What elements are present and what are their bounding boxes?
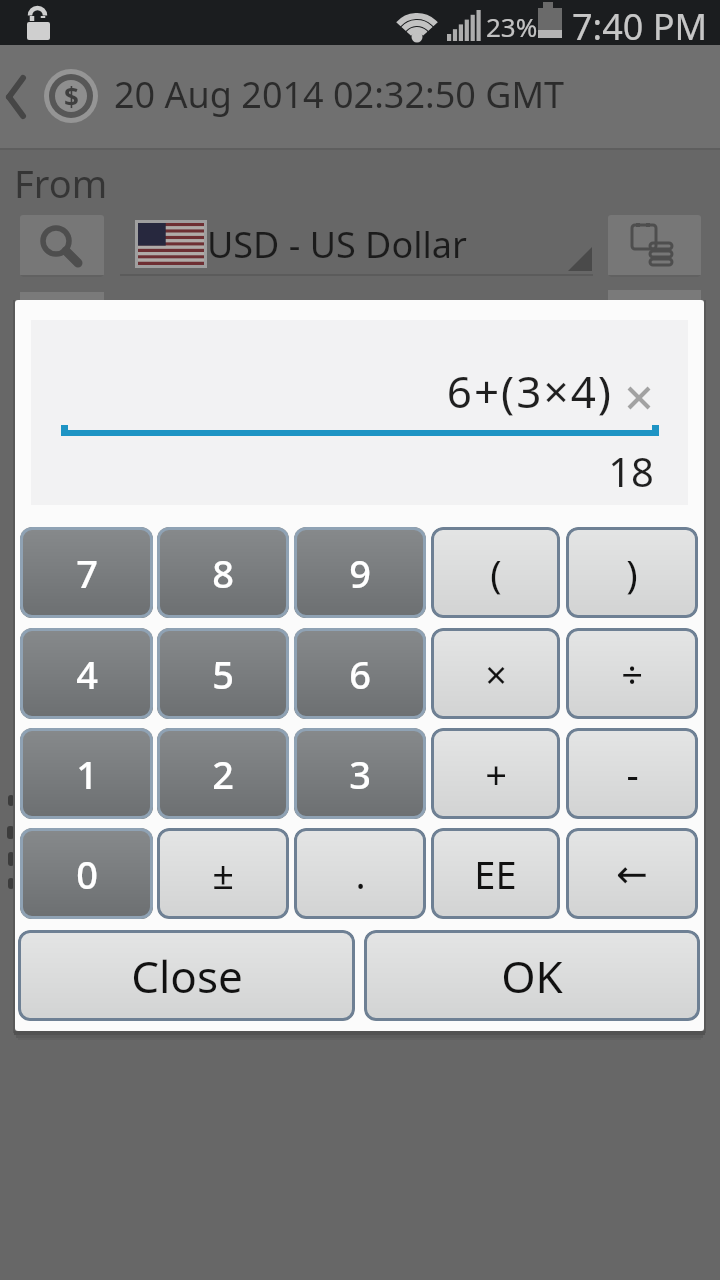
button[interactable]: ←: [566, 828, 698, 919]
staticText: ×: [485, 648, 507, 700]
staticText: USD - US Dollar: [207, 220, 467, 269]
button[interactable]: EE: [431, 828, 560, 919]
staticText: 2: [212, 748, 234, 800]
staticText: (: [490, 547, 502, 599]
staticText: 4: [76, 648, 98, 700]
staticText: 5: [212, 648, 234, 700]
button[interactable]: 1: [20, 728, 153, 819]
button[interactable]: -: [566, 728, 698, 819]
button[interactable]: ×: [431, 628, 560, 719]
staticText: 7:40 PM: [572, 2, 708, 47]
button[interactable]: OK: [364, 930, 700, 1021]
staticText: OK: [501, 946, 563, 1006]
button[interactable]: Close: [18, 930, 355, 1021]
staticText: 23%: [486, 9, 538, 44]
staticText: 1: [76, 748, 98, 800]
staticText: 20 Aug 2014 02:32:50 GMT: [114, 70, 565, 119]
staticText: $: [64, 79, 79, 114]
button[interactable]: +: [431, 728, 560, 819]
staticText: Close: [131, 946, 243, 1006]
button[interactable]: 8: [157, 527, 289, 618]
staticText: ÷: [621, 648, 643, 700]
button[interactable]: 7: [20, 527, 153, 618]
button[interactable]: [20, 215, 104, 277]
staticText: 7: [76, 547, 98, 599]
staticText: -: [626, 748, 639, 800]
button[interactable]: 3: [294, 728, 426, 819]
staticText: ): [626, 547, 638, 599]
staticText: EE: [474, 848, 517, 900]
button[interactable]: ÷: [566, 628, 698, 719]
button[interactable]: 5: [157, 628, 289, 719]
staticText: +: [485, 748, 507, 800]
staticText: 8: [212, 547, 234, 599]
staticText: ←: [616, 852, 648, 896]
button[interactable]: ): [566, 527, 698, 618]
staticText: From: [14, 157, 108, 209]
button[interactable]: 0: [20, 828, 153, 919]
staticText: 0: [76, 848, 98, 900]
button[interactable]: 6: [294, 628, 426, 719]
staticText: 6: [349, 648, 371, 700]
button[interactable]: (: [431, 527, 560, 618]
staticText: ±: [212, 848, 234, 900]
button[interactable]: ±: [157, 828, 289, 919]
button[interactable]: .: [294, 828, 426, 919]
staticText: 9: [349, 547, 371, 599]
button[interactable]: [608, 215, 701, 277]
button[interactable]: 4: [20, 628, 153, 719]
staticText: 3: [349, 748, 371, 800]
button[interactable]: USD - US Dollar: [120, 210, 593, 277]
button[interactable]: $: [0, 45, 720, 150]
staticText: .: [355, 848, 366, 900]
button[interactable]: 2: [157, 728, 289, 819]
staticText: 6+(3×4): [31, 361, 613, 421]
button[interactable]: 9: [294, 527, 426, 618]
staticText: 18: [31, 444, 654, 498]
